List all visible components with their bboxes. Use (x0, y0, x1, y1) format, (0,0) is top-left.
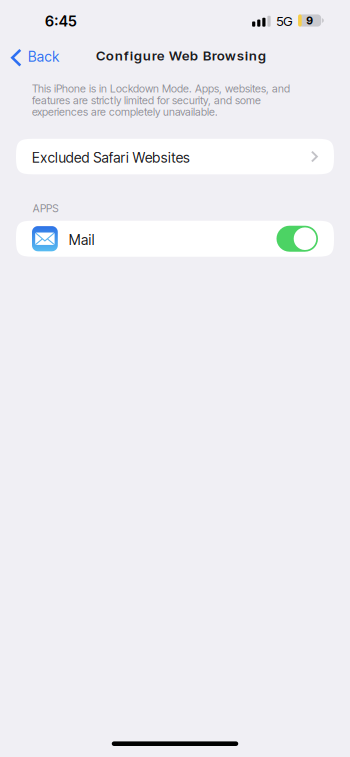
staticText: Configure Web Browsing (96, 48, 266, 64)
button[interactable]: Mail (276, 226, 318, 252)
staticText: APPS (33, 202, 58, 215)
staticText: 5G (276, 13, 292, 29)
staticText: experiences are completely unavailable. (32, 105, 218, 118)
staticText: Mail (69, 231, 95, 248)
button[interactable]: Back (0, 44, 76, 72)
staticText: 9 (306, 14, 313, 27)
button[interactable]: Excluded Safari Websites (16, 139, 334, 174)
staticText: Excluded Safari Websites (32, 149, 190, 166)
staticText: features are strictly limited for securi… (32, 94, 261, 107)
staticText: Back (28, 48, 59, 65)
staticText: 6:45 (45, 12, 77, 30)
staticText: This iPhone is in Lockdown Mode. Apps, w… (32, 82, 290, 95)
